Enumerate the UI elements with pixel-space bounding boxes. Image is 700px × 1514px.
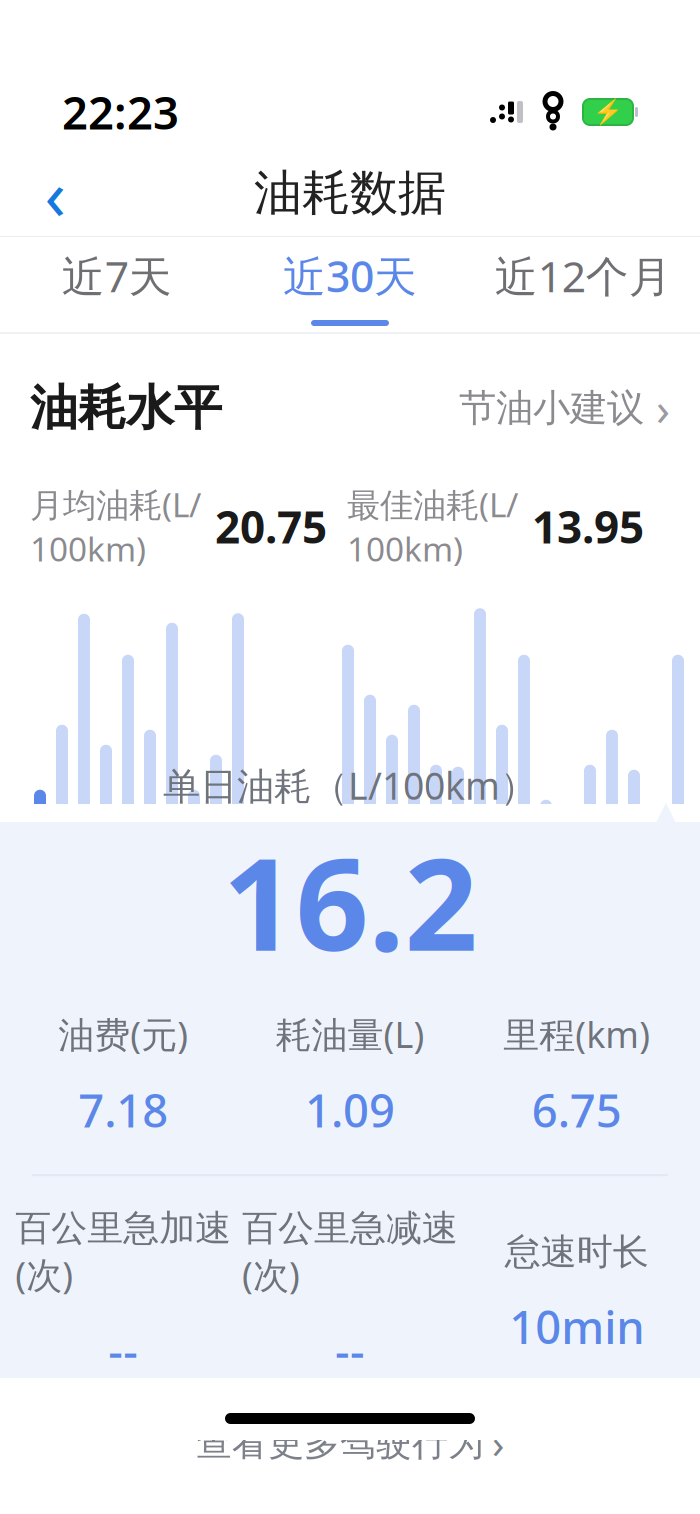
- staticText: 1.09: [305, 1080, 395, 1140]
- staticText: 最佳油耗(L/100km): [347, 482, 518, 571]
- staticText: ›: [492, 1416, 504, 1469]
- staticText: 05-09: [86, 994, 150, 1079]
- staticText: 20.75: [215, 497, 327, 556]
- button[interactable]: 节油小建议: [459, 368, 670, 448]
- button[interactable]: 查看更多驾驶行为: [180, 1408, 520, 1477]
- staticText: 22:23: [62, 82, 179, 142]
- staticText: 里程(km): [503, 1010, 650, 1058]
- staticText: 16.2: [222, 816, 477, 986]
- staticText: 油费(元): [58, 1010, 188, 1058]
- button[interactable]: 返回: [16, 153, 94, 233]
- staticText: 单日油耗（L/100km）: [163, 760, 537, 810]
- staticText: 耗油量(L): [275, 1010, 424, 1058]
- staticText: ›: [656, 378, 670, 438]
- staticText: 近30天: [283, 247, 417, 304]
- staticText: ‹: [44, 147, 65, 239]
- staticText: ⚡: [593, 98, 623, 126]
- button[interactable]: 近7天: [0, 237, 233, 332]
- staticText: 05-21: [395, 994, 459, 1079]
- staticText: 百公里急加速(次): [15, 1206, 231, 1298]
- button[interactable]: 近12个月: [467, 237, 700, 332]
- staticText: 05-30: [627, 994, 691, 1079]
- button[interactable]: 近30天: [233, 237, 467, 332]
- staticText: 6.75: [532, 1080, 622, 1140]
- staticText: 月均油耗(L/100km): [30, 482, 201, 571]
- staticText: 05-15: [241, 994, 305, 1079]
- staticText: 节油小建议: [459, 385, 644, 431]
- staticText: 近7天: [62, 247, 172, 304]
- staticText: 油耗数据: [254, 163, 446, 222]
- staticText: 怠速时长: [505, 1230, 649, 1274]
- staticText: 油耗水平: [30, 379, 222, 438]
- staticText: 05-24: [473, 994, 537, 1079]
- staticText: 查看更多驾驶行为: [196, 1421, 484, 1465]
- staticText: 百公里急减速(次): [242, 1206, 458, 1298]
- staticText: 05-27: [550, 994, 614, 1079]
- staticText: 近12个月: [495, 247, 672, 304]
- staticText: 05-06: [9, 994, 73, 1079]
- staticText: 05-12: [163, 994, 227, 1079]
- staticText: ▲: [652, 793, 679, 833]
- staticText: --: [108, 1320, 138, 1380]
- staticText: 05-18: [318, 994, 382, 1079]
- staticText: --: [335, 1320, 365, 1380]
- staticText: 10min: [509, 1296, 644, 1356]
- staticText: 13.95: [532, 497, 644, 556]
- staticText: 7.18: [78, 1080, 168, 1140]
